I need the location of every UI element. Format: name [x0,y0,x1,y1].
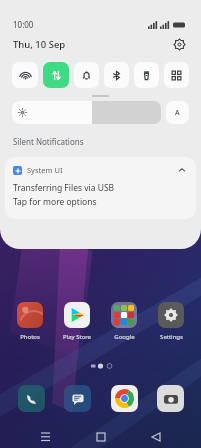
button[interactable]: Collapse [176,164,188,176]
staticText: Google [114,333,135,341]
button[interactable]: Messages [60,381,94,415]
staticText: Transferring Files via USB [13,182,115,194]
button[interactable]: Recents [34,426,56,448]
button[interactable]: Play Store [57,300,97,341]
button[interactable]: Phone [14,381,48,415]
button[interactable]: Mobile data [43,62,69,88]
button[interactable]: Home [90,426,112,448]
staticText: Silent Notifications [13,136,84,147]
staticText: Settings [160,333,183,341]
button[interactable]: Photos [10,300,50,341]
button[interactable]: More settings [164,62,189,88]
staticText: Thu, 10 Sep [13,38,66,51]
button[interactable]: Wi-Fi [12,62,38,88]
button[interactable]: Flashlight [134,62,159,88]
button[interactable]: System UI [5,157,196,219]
staticText: Play Store [63,333,91,341]
button[interactable]: Chrome [107,381,141,415]
button[interactable]: Settings [170,35,188,53]
button[interactable]: Settings [151,300,191,341]
button[interactable]: Camera [153,381,187,415]
staticText: Tap for more options [13,196,97,208]
button[interactable]: Do not disturb [74,62,99,88]
button[interactable]: Back [145,426,167,448]
button[interactable]: Bluetooth [104,62,129,88]
button[interactable]: Brightness [12,101,161,124]
staticText: System UI [27,165,63,175]
staticText: 10:00 [13,19,34,30]
button[interactable]: Auto brightness [166,101,189,124]
button[interactable]: Google [104,300,144,341]
staticText: A [175,108,180,118]
staticText: Photos [20,333,40,341]
